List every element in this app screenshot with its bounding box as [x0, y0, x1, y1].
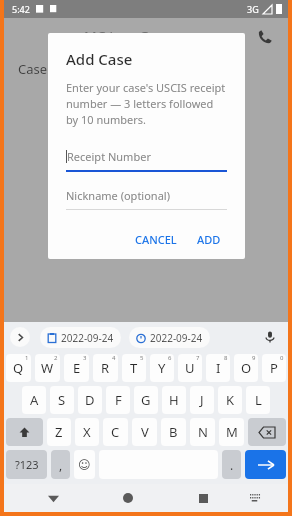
staticText: Add Case [66, 49, 133, 69]
staticText: Receipt Number [67, 149, 151, 164]
button[interactable]: Keyboard [241, 485, 267, 511]
staticText: J [200, 391, 204, 409]
button[interactable]: ADD [191, 226, 227, 253]
staticText: 3 [83, 354, 87, 362]
button[interactable]: L [246, 386, 270, 414]
staticText: P [270, 359, 278, 377]
button[interactable]: S [50, 386, 74, 414]
button[interactable]: ☺ [74, 450, 95, 479]
staticText: S [58, 391, 66, 409]
staticText: 7 [196, 354, 200, 362]
button[interactable]: T [122, 354, 146, 382]
button[interactable]: Voice input [260, 327, 280, 347]
button[interactable]: 2022-09-24 [129, 327, 210, 348]
staticText: 2 [54, 354, 58, 362]
staticText: V [141, 423, 149, 441]
staticText: 8 [224, 354, 228, 362]
button[interactable]: Period [222, 450, 241, 479]
button[interactable]: C [103, 418, 128, 446]
staticText: H [169, 391, 179, 409]
staticText: 1 [25, 354, 29, 362]
button[interactable]: Nickname (optional) [66, 188, 227, 210]
button[interactable]: F [106, 386, 130, 414]
button[interactable]: E [64, 354, 89, 382]
staticText: I [216, 359, 221, 377]
staticText: Nickname (optional) [66, 188, 170, 203]
button[interactable]: J [190, 386, 214, 414]
staticText: 4 [112, 354, 116, 362]
staticText: B [169, 423, 178, 441]
staticText: 6 [168, 354, 172, 362]
staticText: A [30, 391, 39, 409]
staticText: 5 [140, 354, 144, 362]
button[interactable]: U [178, 354, 202, 382]
button[interactable]: N [190, 418, 215, 446]
button[interactable]: V [132, 418, 157, 446]
staticText: CANCEL [135, 232, 177, 247]
button[interactable]: Backspace [248, 418, 286, 446]
staticText: N [198, 423, 208, 441]
button[interactable]: Z [47, 418, 71, 446]
staticText: MC Law Group [84, 27, 181, 46]
staticText: . [230, 457, 234, 473]
staticText: 9 [252, 354, 256, 362]
button[interactable]: X [75, 418, 99, 446]
button[interactable]: R [93, 354, 118, 382]
staticText: 3G [247, 3, 259, 15]
button[interactable]: CANCEL [129, 226, 183, 253]
button[interactable]: H [162, 386, 186, 414]
staticText: Q [13, 359, 24, 377]
button[interactable]: Home [115, 485, 141, 511]
button[interactable]: Recents [190, 485, 216, 511]
button[interactable]: Symbols [6, 450, 47, 479]
staticText: Y [158, 359, 166, 377]
staticText: T [130, 359, 138, 377]
button[interactable]: Q [6, 354, 31, 382]
staticText: Enter your case's USCIS receipt number —… [66, 80, 227, 127]
staticText: K [226, 391, 235, 409]
staticText: ☺ [78, 458, 91, 472]
staticText: F [115, 391, 122, 409]
staticText: 2022-09-24 [150, 331, 203, 345]
button[interactable]: Enter [245, 450, 286, 479]
staticText: X [83, 423, 91, 441]
staticText: 5:42 [12, 3, 30, 15]
button[interactable]: P [262, 354, 286, 382]
button[interactable]: 2022-09-24 [40, 327, 121, 348]
button[interactable]: Receipt Number [66, 149, 227, 172]
staticText: Z [55, 423, 63, 441]
button[interactable]: Expand [10, 327, 30, 347]
button[interactable]: Shift [6, 418, 43, 446]
button[interactable]: K [218, 386, 242, 414]
button[interactable]: Back [40, 485, 66, 511]
button[interactable]: O [234, 354, 258, 382]
button[interactable]: Comma [51, 450, 70, 479]
button[interactable]: D [78, 386, 102, 414]
staticText: ADD [197, 232, 221, 247]
staticText: U [185, 359, 195, 377]
button[interactable]: G [134, 386, 158, 414]
staticText: 2022-09-24 [61, 331, 114, 345]
staticText: ?123 [15, 457, 39, 472]
staticText: M [226, 423, 238, 441]
button[interactable]: A [22, 386, 46, 414]
button[interactable]: B [161, 418, 186, 446]
staticText: W [41, 359, 54, 377]
staticText: L [255, 391, 262, 409]
staticText: O [241, 359, 252, 377]
button[interactable]: W [35, 354, 60, 382]
button[interactable]: Call [252, 23, 278, 49]
staticText: R [101, 359, 110, 377]
staticText: , [59, 457, 63, 473]
button[interactable]: Y [150, 354, 174, 382]
staticText: G [141, 391, 151, 409]
staticText: C [111, 423, 120, 441]
staticText: Case [18, 60, 48, 78]
button[interactable]: M [219, 418, 244, 446]
staticText: D [85, 391, 95, 409]
staticText: E [73, 359, 81, 377]
staticText: 0 [280, 354, 284, 362]
button[interactable]: I [206, 354, 230, 382]
